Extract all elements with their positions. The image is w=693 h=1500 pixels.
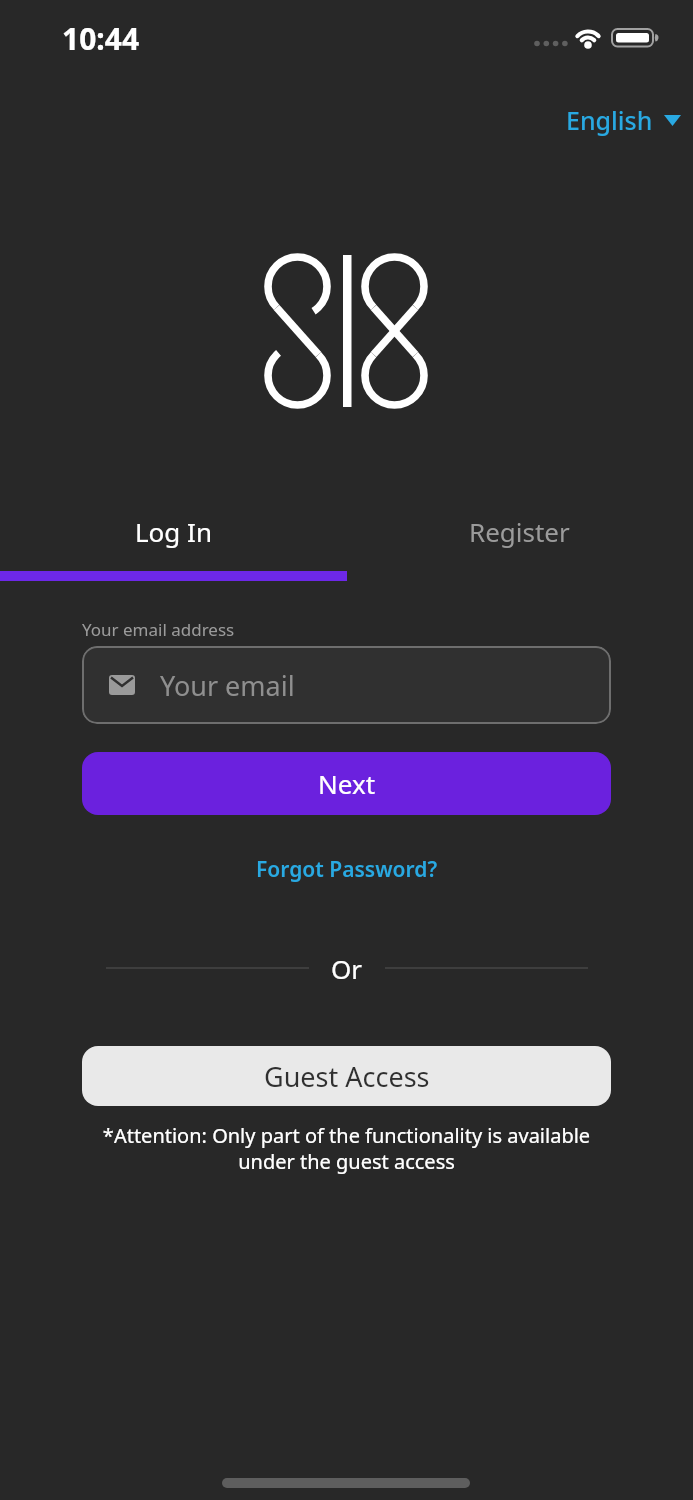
button[interactable]: English bbox=[554, 97, 693, 143]
button[interactable]: Register bbox=[346, 502, 693, 560]
staticText: Log In bbox=[135, 514, 212, 549]
staticText: Next bbox=[318, 766, 376, 801]
staticText: English bbox=[566, 103, 653, 137]
staticText: Your email address bbox=[82, 618, 235, 641]
staticText: Or bbox=[331, 951, 363, 986]
staticText: *Attention: Only part of the functionali… bbox=[0, 1122, 693, 1175]
staticText: Your email bbox=[160, 667, 295, 704]
button[interactable]: Log In bbox=[0, 502, 346, 560]
staticText: Guest Access bbox=[264, 1058, 430, 1095]
button[interactable]: Forgot Password? bbox=[250, 849, 444, 890]
button[interactable]: Guest Access bbox=[82, 1046, 611, 1106]
staticText: Register bbox=[469, 514, 570, 549]
button[interactable]: Next bbox=[82, 752, 611, 815]
staticText: 10:44 bbox=[62, 18, 140, 59]
button[interactable]: Your email bbox=[82, 646, 611, 724]
